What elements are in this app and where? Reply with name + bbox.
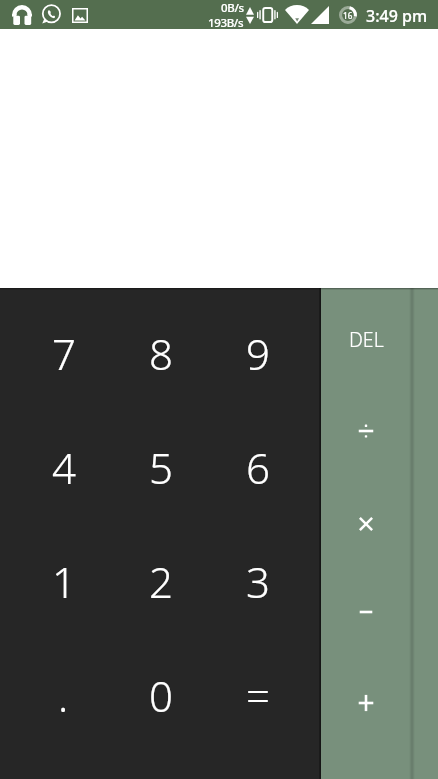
- button[interactable]: Multiply: [320, 478, 412, 569]
- staticText: 8: [149, 325, 173, 382]
- other: Headphones: [12, 5, 32, 25]
- staticText: 16: [343, 10, 353, 21]
- button[interactable]: =: [209, 638, 306, 752]
- staticText: 4: [52, 439, 76, 496]
- staticText: 0: [149, 667, 173, 724]
- button[interactable]: DEL: [320, 294, 412, 385]
- staticText: 0B/s: [221, 0, 244, 16]
- button[interactable]: 5: [112, 410, 209, 524]
- staticText: 6: [246, 439, 270, 496]
- other: WhatsApp: [41, 4, 61, 24]
- button[interactable]: 1: [15, 524, 112, 638]
- staticText: 1: [52, 553, 76, 610]
- staticText: 3:49 pm: [366, 5, 428, 27]
- other: Wi-Fi: [285, 6, 309, 24]
- button[interactable]: Add: [320, 657, 412, 748]
- other: Signal: [311, 6, 329, 24]
- button[interactable]: 8: [112, 296, 209, 410]
- button[interactable]: Subtract: [320, 566, 412, 657]
- staticText: 9: [246, 325, 270, 382]
- staticText: 193B/s: [208, 15, 244, 31]
- button[interactable]: Divide: [320, 385, 412, 476]
- staticText: .: [58, 667, 69, 724]
- staticText: =: [246, 667, 270, 724]
- other: Digital Wellbeing: [339, 6, 357, 24]
- button[interactable]: 4: [15, 410, 112, 524]
- staticText: 7: [52, 325, 76, 382]
- staticText: 3: [246, 553, 270, 610]
- button[interactable]: 7: [15, 296, 112, 410]
- staticText: DEL: [349, 326, 384, 353]
- staticText: 2: [149, 553, 173, 610]
- button[interactable]: 0: [112, 638, 209, 752]
- other: Vibrate: [257, 7, 278, 23]
- staticText: 5: [149, 439, 173, 496]
- button[interactable]: 6: [209, 410, 306, 524]
- button[interactable]: 2: [112, 524, 209, 638]
- button[interactable]: 3: [209, 524, 306, 638]
- other: Gallery: [72, 8, 88, 23]
- button[interactable]: 9: [209, 296, 306, 410]
- button[interactable]: .: [15, 638, 112, 752]
